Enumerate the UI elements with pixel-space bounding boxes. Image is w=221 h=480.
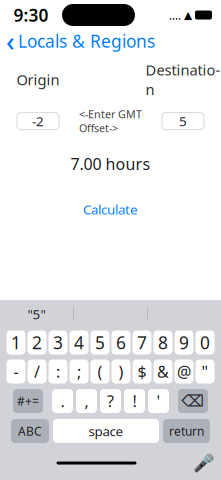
button[interactable]: $ <box>132 359 151 383</box>
staticText: #+= <box>17 393 39 409</box>
staticText: / <box>34 361 40 382</box>
staticText: 9:30 <box>13 3 48 26</box>
staticText: 9 <box>179 331 189 354</box>
button[interactable]: space <box>53 419 159 443</box>
button[interactable]: 4 <box>69 330 88 354</box>
staticText: 4 <box>74 331 84 354</box>
staticText: ▲ <box>184 9 192 21</box>
button[interactable]: ABC <box>11 419 49 443</box>
button[interactable]: -2 <box>17 113 59 130</box>
button[interactable]: - <box>6 359 25 383</box>
staticText: Locals & Regions <box>18 29 155 52</box>
staticText: -2 <box>32 112 44 130</box>
button[interactable]: 2 <box>27 330 46 354</box>
button[interactable]: 7 <box>132 330 151 354</box>
staticText: 🎤 <box>193 453 215 473</box>
staticText: ? <box>107 390 114 412</box>
staticText: 7.00 hours <box>70 153 150 174</box>
button[interactable]: Calculate <box>73 196 148 222</box>
staticText: .... <box>169 7 181 23</box>
button[interactable]: 6 <box>111 330 130 354</box>
button[interactable]: & <box>153 359 172 383</box>
button[interactable]: 1 <box>6 330 25 354</box>
staticText: <-Enter GMT Offset-> <box>79 107 142 135</box>
staticText: , <box>84 390 88 412</box>
button[interactable]: Dictation <box>193 452 215 474</box>
staticText: 6 <box>116 331 126 354</box>
button[interactable]: ‹ <box>0 20 155 62</box>
button[interactable]: 8 <box>153 330 172 354</box>
staticText: Calculate <box>83 200 138 218</box>
staticText: space <box>88 422 123 440</box>
staticText: - <box>13 361 18 382</box>
staticText: ⌫ <box>181 392 204 410</box>
staticText: return <box>169 423 204 439</box>
staticText: 5 <box>179 112 187 130</box>
button[interactable]: , <box>76 389 97 413</box>
button[interactable]: return <box>163 419 210 443</box>
button[interactable]: ' <box>148 389 169 413</box>
staticText: "5" <box>27 305 45 323</box>
staticText: ) <box>118 361 123 382</box>
staticText: ! <box>132 390 136 412</box>
button[interactable]: @ <box>174 359 193 383</box>
button[interactable]: ! <box>124 389 145 413</box>
staticText: $ <box>137 361 146 382</box>
staticText: ' <box>156 390 160 412</box>
staticText: 7 <box>137 331 147 354</box>
button[interactable]: / <box>27 359 46 383</box>
button[interactable]: 5 <box>162 113 204 130</box>
staticText: @ <box>177 361 191 382</box>
staticText: Destination <box>145 60 220 99</box>
staticText: 1 <box>11 331 21 354</box>
staticText: " <box>201 361 208 382</box>
staticText: 0 <box>200 331 210 354</box>
button[interactable]: 0 <box>195 330 214 354</box>
staticText: Origin <box>16 70 59 89</box>
button[interactable]: Delete <box>178 389 208 413</box>
button[interactable]: ? <box>100 389 121 413</box>
button[interactable]: 9 <box>174 330 193 354</box>
button[interactable]: #+= <box>13 389 43 413</box>
staticText: ( <box>97 361 102 382</box>
staticText: 2 <box>32 331 42 354</box>
button[interactable]: 3 <box>48 330 67 354</box>
staticText: ABC <box>18 423 42 439</box>
staticText: 8 <box>158 331 168 354</box>
staticText: ‹ <box>6 23 15 59</box>
staticText: 3 <box>53 331 63 354</box>
staticText: ; <box>77 361 81 382</box>
staticText: 5 <box>95 331 105 354</box>
button[interactable]: 5 <box>90 330 109 354</box>
button[interactable]: . <box>52 389 73 413</box>
staticText: . <box>60 390 64 412</box>
button[interactable]: : <box>48 359 67 383</box>
staticText: & <box>157 361 169 382</box>
button[interactable]: ; <box>69 359 88 383</box>
button[interactable]: ) <box>111 359 130 383</box>
button[interactable]: " <box>195 359 214 383</box>
button[interactable]: ( <box>90 359 109 383</box>
staticText: : <box>56 361 60 382</box>
